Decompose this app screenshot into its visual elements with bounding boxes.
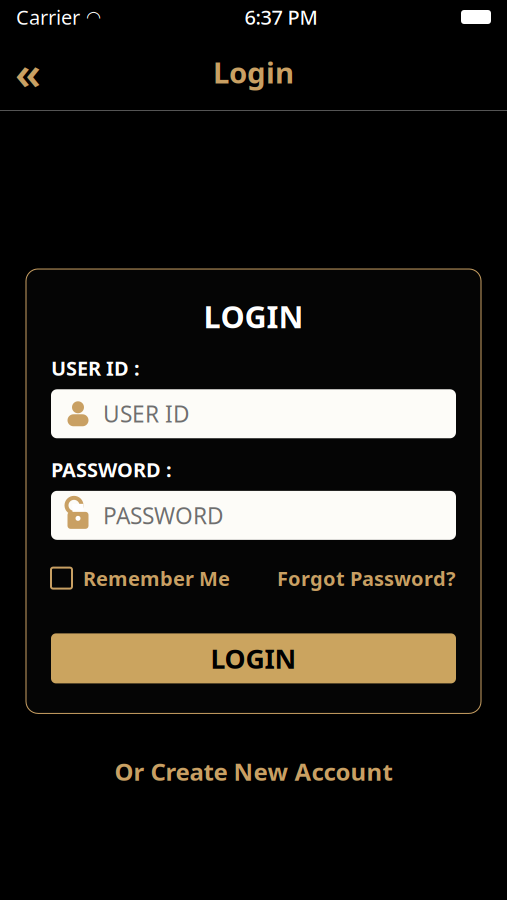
- button[interactable]: USER ID: [51, 389, 456, 438]
- staticText: PASSWORD: [103, 500, 224, 530]
- staticText: 6:37 PM: [244, 4, 317, 30]
- staticText: USER ID: [103, 399, 190, 429]
- button[interactable]: Remember Me: [51, 565, 230, 591]
- staticText: Carrier: [16, 4, 80, 30]
- button[interactable]: PASSWORD: [51, 491, 456, 540]
- staticText: Forgot Password?: [277, 565, 456, 591]
- staticText: LOGIN: [203, 296, 303, 337]
- staticText: USER ID :: [51, 355, 140, 381]
- staticText: Login: [213, 52, 294, 91]
- button[interactable]: Back: [0, 48, 56, 96]
- button[interactable]: LOGIN: [51, 633, 456, 683]
- staticText: Remember Me: [83, 565, 230, 591]
- button[interactable]: Forgot Password?: [277, 565, 456, 591]
- staticText: Or Create New Account: [114, 755, 392, 787]
- staticText: «: [15, 42, 41, 102]
- staticText: PASSWORD :: [51, 456, 172, 483]
- button[interactable]: Or Create New Account: [94, 713, 412, 797]
- staticText: ◠: [86, 7, 101, 27]
- staticText: LOGIN: [210, 641, 296, 676]
